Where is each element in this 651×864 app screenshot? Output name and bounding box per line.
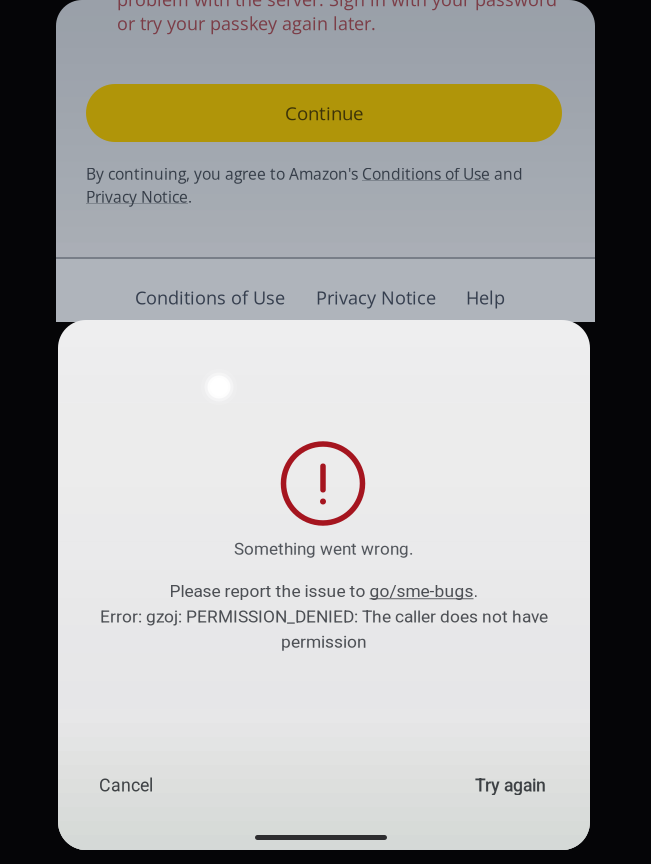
button[interactable]: Try again bbox=[475, 775, 546, 796]
staticText: Privacy Notice. bbox=[86, 186, 192, 207]
staticText: or try your passkey again later. bbox=[117, 11, 376, 35]
staticText: Privacy Notice bbox=[316, 285, 436, 310]
button[interactable]: Continue bbox=[86, 84, 562, 142]
staticText: Please report the issue to go/sme-bugs. bbox=[169, 581, 478, 601]
button[interactable]: Help bbox=[466, 285, 505, 310]
staticText: Continue bbox=[285, 100, 363, 126]
staticText: Help bbox=[466, 285, 505, 310]
staticText: Cancel bbox=[99, 775, 153, 796]
staticText: permission bbox=[281, 632, 367, 652]
staticText: Conditions of Use bbox=[135, 285, 285, 310]
button[interactable]: Privacy Notice bbox=[316, 285, 436, 310]
staticText: Try again bbox=[475, 775, 546, 796]
staticText: problem with the server. Sign in with yo… bbox=[117, 0, 557, 11]
staticText: Error: gzoj: PERMISSION_DENIED: The call… bbox=[100, 606, 548, 627]
staticText: By continuing, you agree to Amazon's Con… bbox=[86, 163, 523, 184]
button[interactable]: Cancel bbox=[99, 775, 153, 796]
button[interactable]: Conditions of Use bbox=[135, 285, 285, 310]
staticText: Something went wrong. bbox=[234, 539, 414, 559]
